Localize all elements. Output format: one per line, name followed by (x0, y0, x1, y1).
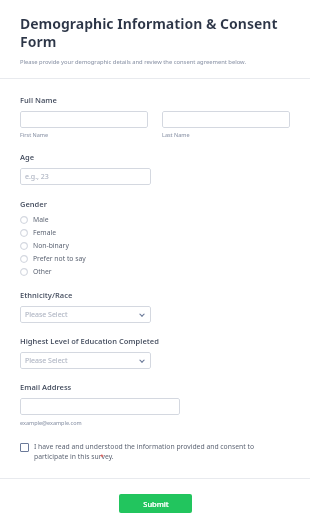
staticText: Female (33, 228, 57, 237)
staticText: Age (20, 152, 35, 162)
button[interactable]: Male (20, 213, 290, 226)
other: Consent checkbox (20, 443, 29, 452)
staticText: Email Address (20, 382, 72, 392)
staticText: Please Select (25, 310, 68, 320)
staticText: Submit (143, 499, 169, 509)
staticText: Gender (20, 199, 47, 209)
staticText: I have read and understood the informati… (34, 442, 290, 461)
button[interactable]: Submit (119, 494, 192, 513)
button[interactable] (162, 111, 290, 128)
button[interactable] (20, 111, 148, 128)
staticText: Please Select (25, 356, 68, 366)
button[interactable]: e.g., 23 (20, 168, 151, 185)
staticText: Non-binary (33, 241, 69, 250)
staticText: Full Name (20, 95, 57, 105)
button[interactable]: Consent checkbox (20, 442, 290, 461)
staticText: Please provide your demographic details … (20, 58, 246, 66)
staticText: e.g., 23 (25, 172, 49, 182)
button[interactable]: Non-binary (20, 239, 290, 252)
button[interactable]: Please Select (20, 352, 151, 369)
button[interactable]: Other (20, 265, 290, 278)
staticText: Prefer not to say (33, 254, 86, 263)
staticText: Last Name (162, 131, 190, 138)
staticText: Male (33, 215, 49, 224)
staticText: * (100, 452, 104, 462)
button[interactable] (20, 398, 180, 415)
staticText: Other (33, 267, 52, 276)
button[interactable]: Please Select (20, 306, 151, 323)
button[interactable]: Prefer not to say (20, 252, 290, 265)
staticText: example@example.com (20, 419, 82, 426)
staticText: Highest Level of Education Completed (20, 336, 159, 346)
staticText: Demographic Information & Consent Form (20, 14, 278, 51)
staticText: First Name (20, 131, 49, 138)
staticText: Ethnicity/Race (20, 290, 73, 300)
button[interactable]: Female (20, 226, 290, 239)
